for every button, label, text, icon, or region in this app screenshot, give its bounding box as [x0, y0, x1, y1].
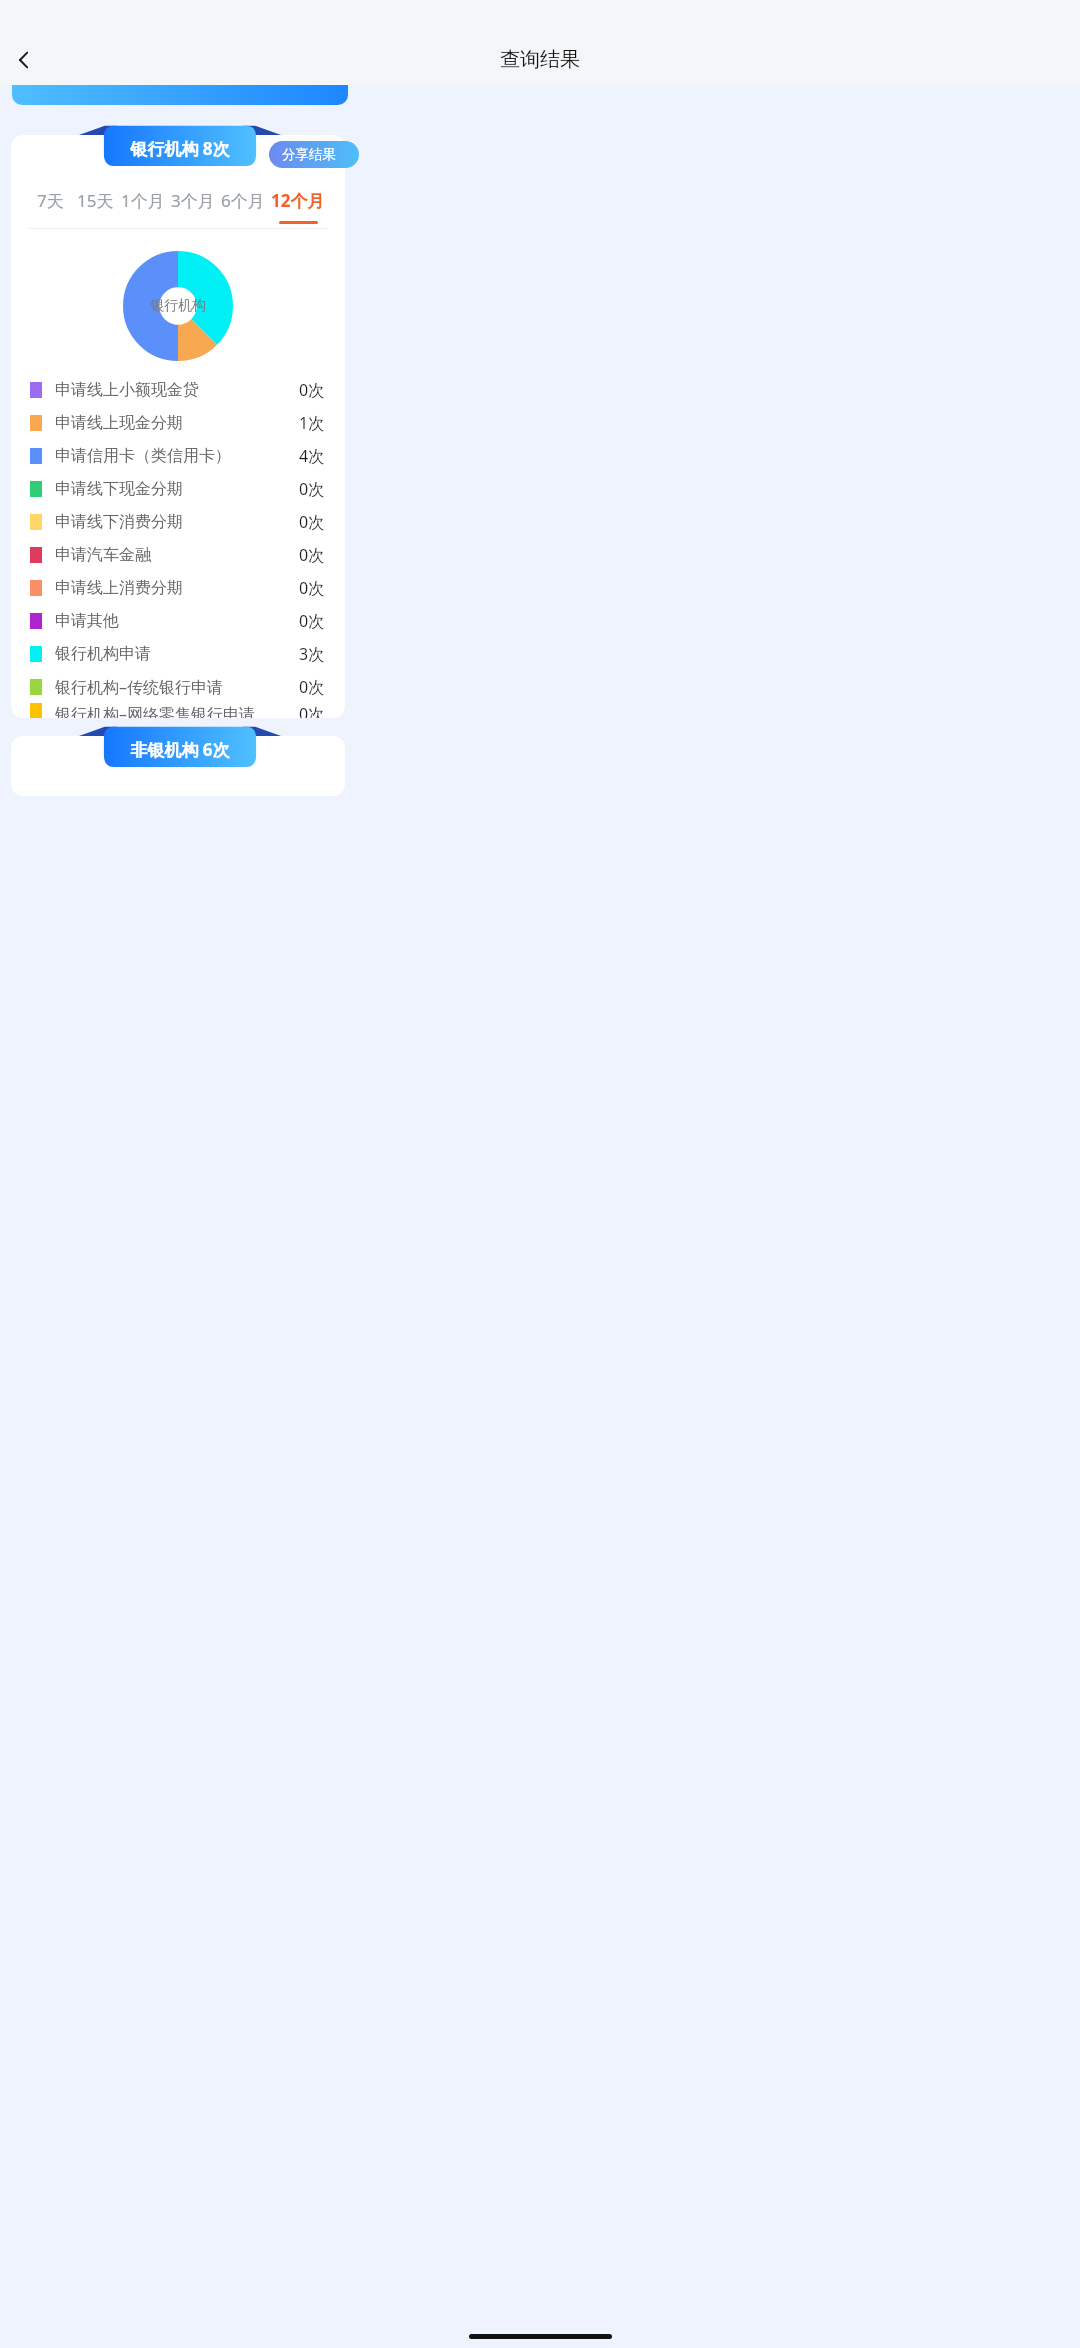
staticText: 4次 [299, 445, 325, 467]
staticText: 15天 [77, 189, 114, 212]
staticText: 0次 [299, 676, 325, 698]
staticText: 0次 [299, 610, 325, 632]
button[interactable]: Back [0, 36, 48, 84]
button[interactable]: 15天 [74, 185, 117, 228]
button[interactable]: 银行机构–网络零售银行申请 [11, 703, 345, 718]
staticText: 查询结果 [500, 47, 580, 72]
button[interactable]: 申请汽车金融 [11, 538, 345, 571]
staticText: 3次 [299, 643, 325, 665]
staticText: 12个月 [271, 189, 325, 212]
button[interactable]: 分享结果 [269, 141, 359, 168]
button[interactable]: 12个月 [269, 185, 327, 228]
button[interactable]: 银行机构–传统银行申请 [11, 670, 345, 703]
staticText: 申请线上现金分期 [55, 413, 183, 433]
staticText: 申请汽车金融 [55, 545, 151, 565]
staticText: 0次 [299, 577, 325, 599]
button[interactable]: 银行机构 8次 [79, 125, 281, 166]
staticText: 申请线下消费分期 [55, 512, 183, 532]
staticText: 7天 [37, 189, 64, 212]
staticText: 1个月 [121, 189, 165, 212]
button[interactable]: 6个月 [219, 185, 267, 228]
staticText: 申请线上消费分期 [55, 578, 183, 598]
staticText: 申请线上小额现金贷 [55, 380, 199, 400]
staticText: 分享结果 [282, 146, 336, 163]
staticText: 申请其他 [55, 611, 119, 631]
staticText: 0次 [299, 478, 325, 500]
staticText: 银行机构–传统银行申请 [55, 676, 224, 698]
staticText: 非银机构 6次 [130, 738, 230, 761]
staticText: 6个月 [221, 189, 265, 212]
button[interactable]: 申请线下消费分期 [11, 505, 345, 538]
button[interactable]: 申请线上消费分期 [11, 571, 345, 604]
staticText: 0次 [299, 544, 325, 566]
button[interactable]: 申请线上小额现金贷 [11, 373, 345, 406]
button[interactable]: 申请信用卡（类信用卡） [11, 439, 345, 472]
staticText: 银行机构 [150, 297, 206, 315]
staticText: 银行机构–网络零售银行申请 [55, 703, 256, 718]
button[interactable]: 申请线下现金分期 [11, 472, 345, 505]
button[interactable]: 申请线上现金分期 [11, 406, 345, 439]
button[interactable]: 7天 [29, 185, 72, 228]
staticText: 银行机构申请 [55, 644, 151, 664]
button[interactable]: 1个月 [119, 185, 167, 228]
button[interactable]: 3个月 [169, 185, 217, 228]
staticText: 0次 [299, 703, 325, 718]
button[interactable]: 银行机构申请 [11, 637, 345, 670]
staticText: 0次 [299, 511, 325, 533]
staticText: 3个月 [171, 189, 215, 212]
staticText: 0次 [299, 379, 325, 401]
staticText: 申请信用卡（类信用卡） [55, 446, 231, 466]
staticText: 银行机构 8次 [130, 137, 230, 160]
button[interactable]: 非银机构 6次 [79, 726, 281, 767]
button[interactable]: 申请其他 [11, 604, 345, 637]
staticText: 申请线下现金分期 [55, 479, 183, 499]
staticText: 1次 [299, 412, 325, 434]
